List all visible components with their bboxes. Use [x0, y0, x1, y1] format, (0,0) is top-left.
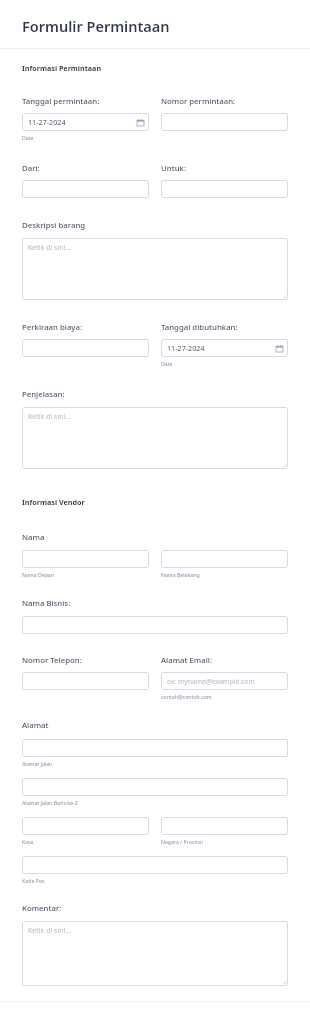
staticText: Dari:: [22, 163, 40, 174]
staticText: Tanggal permintaan:: [22, 96, 100, 107]
button[interactable]: Ketik di sini...: [22, 407, 288, 469]
staticText: 11-27-2024: [28, 117, 66, 127]
staticText: Penjelasan:: [22, 389, 65, 400]
staticText: contoh@contoh.com: [161, 693, 212, 700]
staticText: Untuk:: [161, 163, 186, 174]
staticText: Nomor permintaan:: [161, 96, 236, 107]
button[interactable]: [161, 113, 288, 131]
button[interactable]: [22, 817, 149, 835]
staticText: Date: [161, 360, 173, 367]
button[interactable]: ex: myname@example.com: [161, 672, 288, 690]
button[interactable]: Ketik di sini...: [22, 921, 288, 986]
staticText: ex: myname@example.com: [167, 677, 255, 686]
button[interactable]: [22, 550, 149, 568]
button[interactable]: [161, 817, 288, 835]
button[interactable]: Pilih tanggal: [161, 339, 288, 357]
staticText: Nama Belakang: [161, 571, 200, 578]
staticText: Alamat: [22, 720, 49, 731]
staticText: Deskripsi barang: [22, 220, 86, 231]
staticText: 11-27-2024: [167, 343, 205, 353]
button[interactable]: [22, 856, 288, 874]
staticText: Alamat Email:: [161, 655, 213, 666]
staticText: Kota: [22, 838, 34, 845]
staticText: Informasi Vendor: [22, 497, 85, 507]
button[interactable]: [22, 616, 288, 634]
staticText: Ketik di sini...: [28, 926, 72, 936]
button[interactable]: [22, 180, 149, 198]
staticText: Kode Pos: [22, 877, 45, 884]
staticText: Date: [22, 134, 34, 141]
staticText: Perkiraan biaya:: [22, 322, 83, 333]
button[interactable]: Ketik di sini...: [22, 238, 288, 300]
button[interactable]: [22, 672, 149, 690]
button[interactable]: [22, 739, 288, 757]
staticText: Alamat Jalan: [22, 760, 53, 767]
button[interactable]: [161, 180, 288, 198]
button[interactable]: [22, 339, 149, 357]
staticText: Formulir Permintaan: [22, 16, 170, 36]
staticText: Ketik di sini...: [28, 243, 72, 253]
button[interactable]: [161, 550, 288, 568]
staticText: Alamat Jalan Baris ke-2: [22, 799, 78, 806]
button[interactable]: Pilih tanggal: [22, 113, 149, 131]
staticText: Nama Depan: [22, 571, 54, 578]
staticText: Informasi Permintaan: [22, 63, 102, 73]
staticText: Nama Bisnis:: [22, 598, 71, 609]
staticText: Tanggal dibutuhkan:: [161, 322, 238, 333]
button[interactable]: [22, 778, 288, 796]
staticText: Ketik di sini...: [28, 412, 72, 422]
staticText: Negara / Provinsi: [161, 838, 203, 845]
staticText: Komentar:: [22, 903, 62, 914]
staticText: Nomor Telepon:: [22, 655, 82, 666]
staticText: Nama: [22, 532, 45, 543]
